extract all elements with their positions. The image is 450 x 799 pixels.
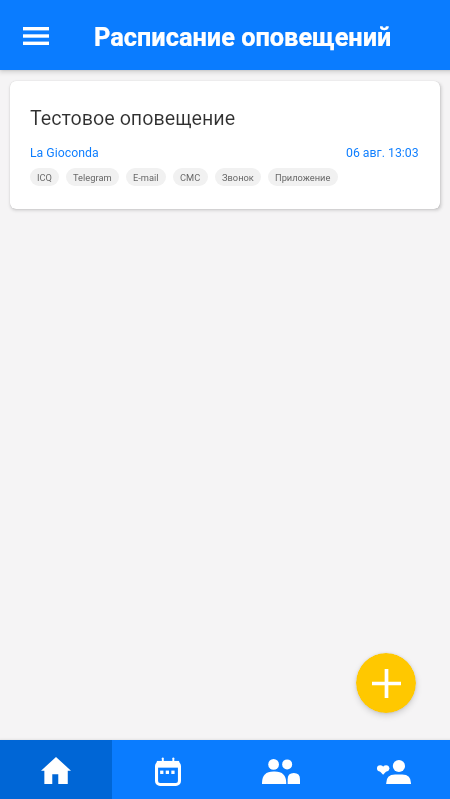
- staticText: Приложение: [275, 172, 331, 183]
- button[interactable]: Тестовое оповещение: [10, 81, 440, 209]
- button[interactable]: Calendar: [112, 740, 224, 799]
- staticText: La Gioconda: [30, 146, 99, 160]
- button[interactable]: Menu: [11, 10, 61, 60]
- button[interactable]: Add: [356, 653, 416, 713]
- staticText: Звонок: [222, 172, 254, 183]
- staticText: Тестовое оповещение: [30, 107, 236, 130]
- staticText: СМС: [180, 172, 201, 183]
- staticText: 06 авг. 13:03: [346, 146, 419, 160]
- button[interactable]: Favorites: [337, 740, 450, 799]
- staticText: Telegram: [73, 172, 112, 183]
- staticText: E-mail: [133, 172, 159, 183]
- staticText: Расписание оповещений: [94, 23, 392, 53]
- staticText: ICQ: [37, 172, 52, 183]
- button[interactable]: Contacts: [224, 740, 337, 799]
- button[interactable]: Home: [0, 740, 112, 799]
